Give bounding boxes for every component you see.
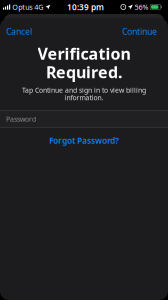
staticText: Required. bbox=[46, 61, 122, 83]
button[interactable]: Password bbox=[0, 110, 168, 128]
staticText: Forgot Password? bbox=[49, 135, 119, 146]
staticText: Continue bbox=[122, 26, 157, 37]
button[interactable]: Cancel bbox=[6, 23, 40, 39]
staticText: Password bbox=[6, 114, 36, 124]
staticText: Optus bbox=[12, 2, 32, 12]
button[interactable]: Forgot Password? bbox=[0, 134, 168, 146]
staticText: Tap Continue and sign in to view billing bbox=[22, 85, 146, 94]
button[interactable]: Continue bbox=[107, 23, 157, 39]
staticText: information. bbox=[64, 93, 103, 102]
staticText: 10:39 pm bbox=[67, 1, 104, 12]
staticText: 4G bbox=[34, 2, 43, 12]
staticText: Verification bbox=[37, 43, 130, 64]
staticText: Cancel bbox=[6, 26, 32, 37]
staticText: 56% bbox=[135, 2, 149, 12]
